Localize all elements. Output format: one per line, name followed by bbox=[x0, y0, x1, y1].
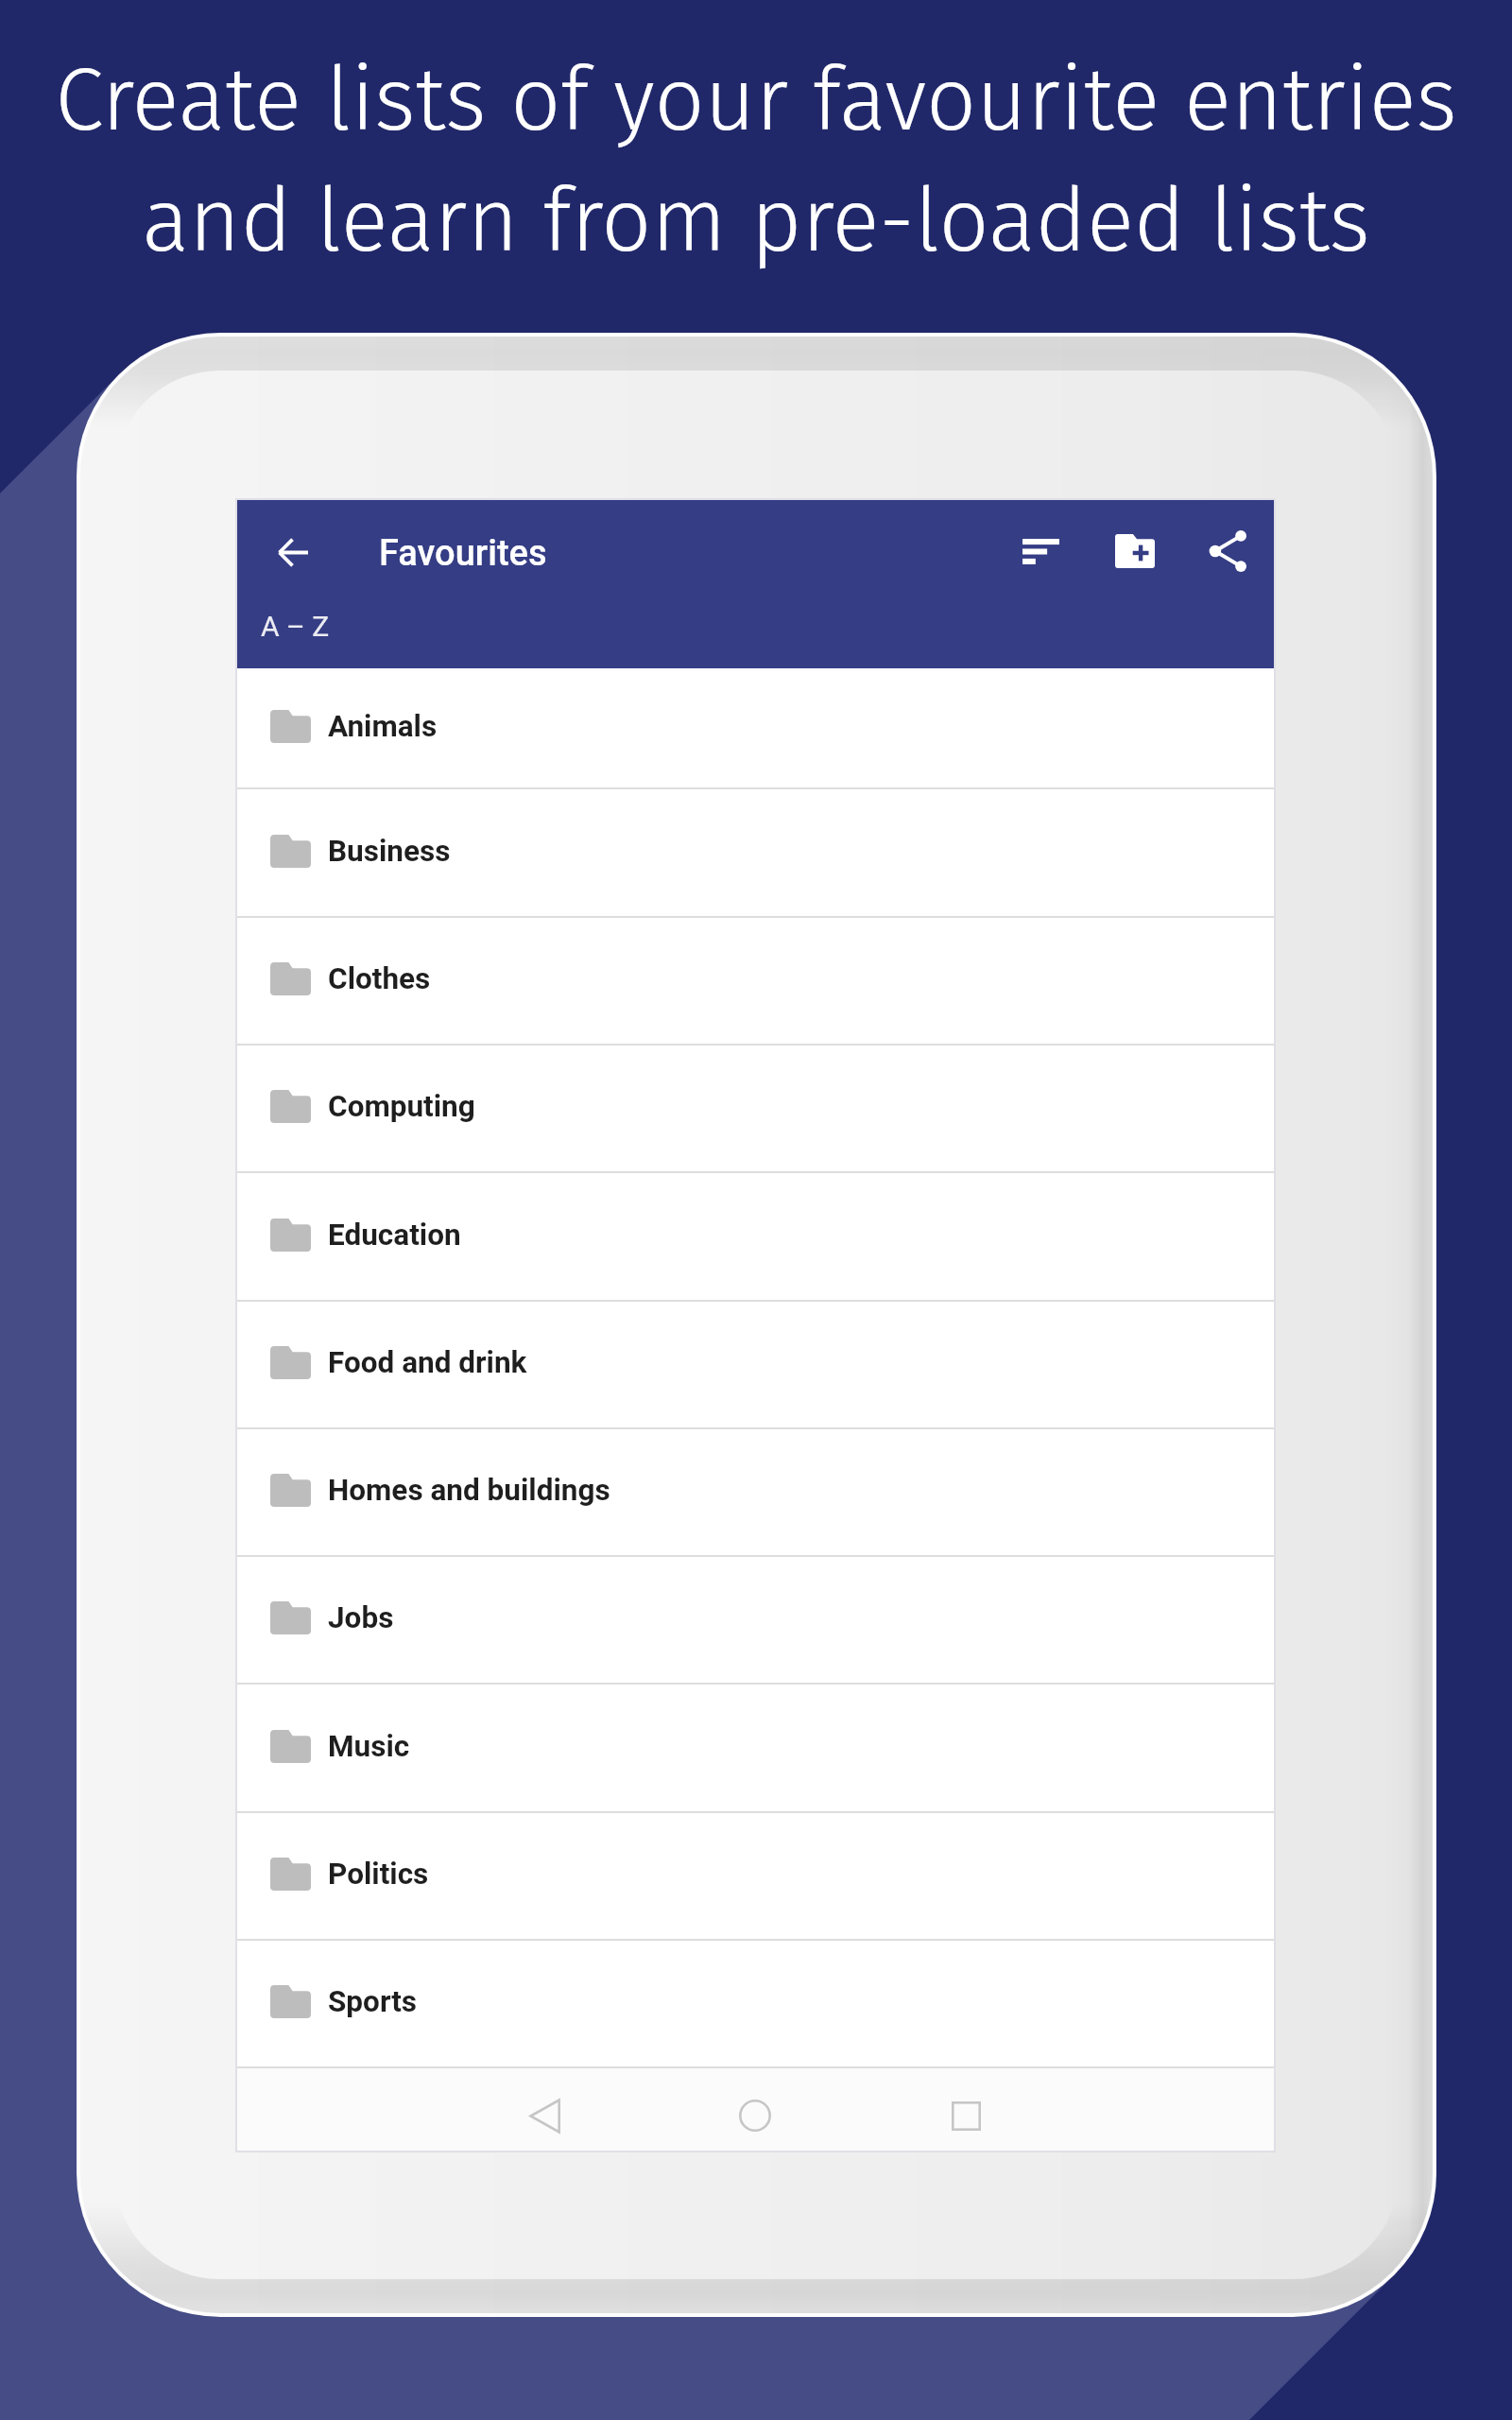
button[interactable]: Back bbox=[251, 510, 335, 594]
staticText: Business bbox=[328, 834, 451, 869]
staticText: A – Z bbox=[261, 610, 330, 643]
staticText: Create lists of your favourite entries a… bbox=[28, 47, 1484, 273]
staticText: Education bbox=[328, 1218, 461, 1253]
button[interactable]: Clothes bbox=[237, 918, 1274, 1044]
staticText: Music bbox=[328, 1729, 410, 1764]
button[interactable]: Politics bbox=[237, 1813, 1274, 1939]
staticText: Sports bbox=[328, 1984, 418, 2019]
button[interactable]: Food and drink bbox=[237, 1302, 1274, 1427]
staticText: Homes and buildings bbox=[328, 1473, 610, 1508]
button[interactable]: Music bbox=[237, 1685, 1274, 1811]
staticText: Animals bbox=[328, 709, 438, 744]
button[interactable]: Computing bbox=[237, 1046, 1274, 1171]
staticText: Jobs bbox=[328, 1600, 394, 1635]
staticText: Favourites bbox=[379, 532, 547, 575]
button[interactable]: Sports bbox=[237, 1941, 1274, 2066]
button[interactable]: Home bbox=[717, 2078, 793, 2153]
button[interactable]: Jobs bbox=[237, 1557, 1274, 1683]
button[interactable]: Business bbox=[237, 789, 1274, 916]
button[interactable]: Education bbox=[237, 1173, 1274, 1300]
button[interactable]: Share bbox=[1186, 510, 1269, 593]
button[interactable]: Back bbox=[507, 2078, 582, 2153]
button[interactable]: Sort bbox=[999, 510, 1082, 593]
button[interactable]: New folder bbox=[1093, 510, 1177, 593]
button[interactable]: Animals bbox=[237, 668, 1274, 787]
staticText: Computing bbox=[328, 1089, 475, 1124]
button[interactable]: Homes and buildings bbox=[237, 1429, 1274, 1555]
staticText: Politics bbox=[328, 1857, 429, 1892]
staticText: Clothes bbox=[328, 961, 431, 996]
button[interactable]: Recents bbox=[928, 2078, 1004, 2153]
staticText: Food and drink bbox=[328, 1345, 527, 1380]
